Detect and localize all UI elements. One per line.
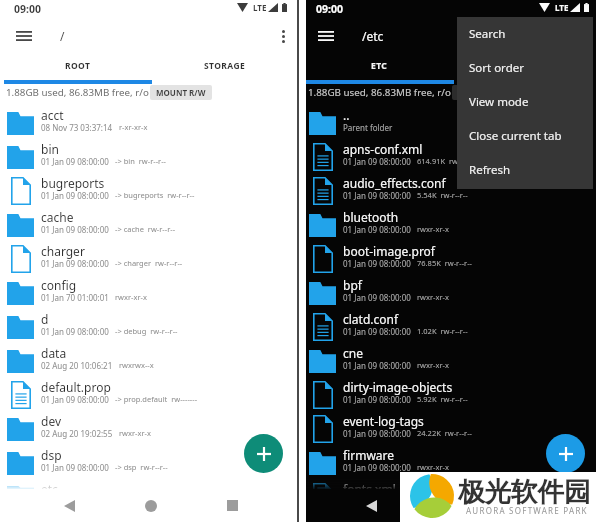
button[interactable]: default.prop [0, 378, 296, 412]
staticText: Parent folder [343, 122, 393, 133]
staticText: rwxr-xr-x [119, 428, 151, 438]
button[interactable]: Open navigation drawer [312, 22, 340, 50]
staticText: 01 Jan 09 08:00:00 [343, 224, 411, 235]
staticText: dsp [41, 447, 62, 463]
button[interactable]: Create new [546, 434, 585, 473]
staticText: 01 Jan 09 08:00:00 [41, 394, 109, 405]
button[interactable]: apns-conf.xml [306, 140, 596, 174]
staticText: View mode [469, 94, 529, 110]
button[interactable]: d [0, 310, 296, 344]
staticText: 1.88GB used, 86.83MB free, r/o [308, 86, 451, 99]
button[interactable]: charger [0, 242, 296, 276]
button[interactable]: data [0, 344, 296, 378]
staticText: -> prop.default rw------- [115, 394, 198, 404]
staticText: 极光软件园 [458, 475, 591, 508]
staticText: data [41, 345, 67, 361]
button[interactable]: MOUNT R/W [452, 85, 514, 100]
staticText: Search [469, 26, 506, 42]
button[interactable]: Sort order [457, 51, 593, 85]
button[interactable]: Recent apps [214, 489, 250, 522]
button[interactable]: boot-image.prof [306, 242, 596, 276]
staticText: -> debug rw-r--r-- [115, 326, 178, 336]
staticText: 76.85K rw-r--r-- [417, 258, 472, 268]
staticText: rwxr-xr-x [417, 462, 449, 472]
staticText: dev [41, 413, 62, 429]
staticText: 1.88GB used, 86.83MB free, r/o [6, 86, 149, 99]
staticText: STORAGE [204, 60, 246, 72]
staticText: Close current tab [469, 128, 562, 144]
staticText: MOUNT R/W [156, 87, 206, 98]
staticText: 5.92K rw-r--r-- [417, 394, 468, 404]
button[interactable]: bin [0, 140, 296, 174]
button[interactable]: cne [306, 344, 596, 378]
button[interactable]: bugreports [0, 174, 296, 208]
button[interactable]: Home [133, 489, 169, 522]
staticText: config [41, 277, 77, 293]
staticText: 01 Jan 09 08:00:00 [343, 462, 411, 473]
staticText: / [60, 28, 65, 44]
staticText: 01 Jan 09 08:00:00 [343, 326, 411, 337]
staticText: 01 Jan 09 08:00:00 [343, 292, 411, 303]
button[interactable]: dev [0, 412, 296, 446]
button[interactable]: fonts.xml [306, 480, 596, 490]
staticText: 01 Jan 09 08:00:00 [343, 428, 411, 439]
staticText: 01 Jan 09 08:00:00 [41, 224, 109, 235]
staticText: 24.22K rw-r--r-- [417, 428, 472, 438]
button[interactable]: STORAGE [151, 53, 298, 79]
staticText: rwxr-xr-x [417, 224, 449, 234]
button[interactable]: event-log-tags [306, 412, 596, 446]
staticText: 01 Jan 09 08:00:00 [343, 156, 411, 167]
staticText: charger [41, 243, 85, 259]
staticText: .. [343, 107, 350, 123]
button[interactable]: bluetooth [306, 208, 596, 242]
button[interactable]: .. [306, 106, 596, 140]
staticText: -> bin rw-r--r-- [115, 156, 166, 166]
staticText: audio_effects.conf [343, 175, 446, 191]
staticText: etc [41, 481, 58, 490]
button[interactable]: Close current tab [457, 119, 593, 153]
button[interactable]: dsp [0, 446, 296, 480]
staticText: 02 Aug 20 19:02:55 [41, 428, 113, 439]
staticText: rwxr-xr-x [417, 360, 449, 370]
staticText: rwxr-xr-x [417, 292, 449, 302]
button[interactable]: View mode [457, 85, 593, 119]
button[interactable]: dirty-image-objects [306, 378, 596, 412]
staticText: 1.02K rw-r--r-- [417, 326, 468, 336]
button[interactable]: ETC [306, 53, 453, 79]
staticText: 01 Jan 09 08:00:00 [343, 258, 411, 269]
button[interactable]: MOUNT R/W [150, 85, 212, 100]
staticText: Refresh [469, 162, 511, 178]
button[interactable]: bpf [306, 276, 596, 310]
staticText: event-log-tags [343, 413, 424, 429]
button[interactable]: Home [435, 489, 471, 522]
button[interactable]: Back [353, 489, 389, 522]
button[interactable]: Search [457, 17, 593, 51]
button[interactable]: More options [570, 23, 596, 49]
button[interactable]: ROOT [4, 53, 151, 79]
button[interactable]: Open navigation drawer [10, 22, 38, 50]
button[interactable]: acct [0, 106, 296, 140]
staticText: -> charger rw-r--r-- [115, 258, 183, 268]
button[interactable]: config [0, 276, 296, 310]
staticText: 01 Jan 09 08:00:00 [41, 326, 109, 337]
staticText: ROOT [65, 60, 91, 72]
button[interactable]: firmware [306, 446, 596, 480]
button[interactable]: cache [0, 208, 296, 242]
staticText: cne [343, 345, 363, 361]
staticText: ETC [371, 60, 388, 72]
button[interactable]: etc [0, 480, 296, 490]
button[interactable]: More options [270, 23, 296, 49]
staticText: 614.91K rw-r--r-- [417, 156, 477, 166]
staticText: cache [41, 209, 74, 225]
staticText: apns-conf.xml [343, 141, 423, 157]
button[interactable]: Create new [244, 434, 283, 473]
button[interactable]: audio_effects.conf [306, 174, 596, 208]
button[interactable]: Back [51, 489, 87, 522]
button[interactable]: Recent apps [516, 489, 552, 522]
staticText: 01 Jan 09 08:00:00 [41, 156, 109, 167]
button[interactable]: clatd.conf [306, 310, 596, 344]
button[interactable]: Refresh [457, 153, 593, 187]
staticText: bin [41, 141, 59, 157]
staticText: -> dsp rw-r--r-- [115, 462, 168, 472]
staticText: LTE [555, 2, 569, 13]
